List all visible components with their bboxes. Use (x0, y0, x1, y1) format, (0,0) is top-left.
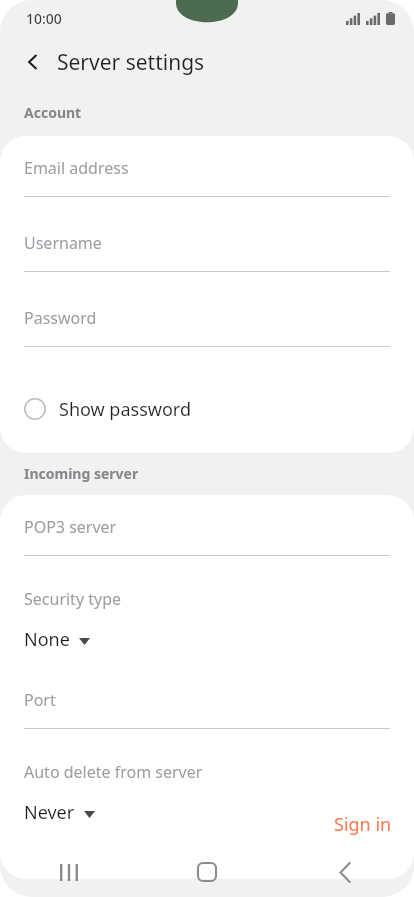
button[interactable]: Show password (0, 387, 414, 431)
button[interactable]: Recents (0, 847, 138, 897)
button[interactable]: Port (0, 686, 414, 761)
button[interactable]: Home (138, 847, 276, 897)
staticText: Security type (24, 588, 122, 610)
staticText: Port (24, 689, 56, 711)
staticText: Incoming server (24, 464, 139, 483)
button[interactable]: Security type (0, 588, 414, 686)
button[interactable]: Sign in (312, 803, 414, 846)
button[interactable]: Back (276, 847, 414, 897)
button[interactable]: Back (12, 41, 54, 83)
button[interactable]: Password (0, 304, 414, 379)
button[interactable]: Username (0, 229, 414, 304)
staticText: Email address (24, 157, 129, 179)
button[interactable]: Email address (0, 154, 414, 229)
button[interactable]: POP3 server (0, 513, 414, 588)
staticText: Show password (59, 397, 191, 422)
staticText: None (24, 627, 70, 652)
staticText: Sign in (334, 812, 392, 837)
staticText: Never (24, 800, 75, 825)
staticText: Auto delete from server (24, 761, 203, 783)
staticText: Account (24, 103, 82, 122)
button[interactable]: Auto delete from server (0, 761, 414, 859)
staticText: Username (24, 232, 102, 254)
staticText: POP3 server (24, 516, 117, 538)
staticText: Password (24, 307, 97, 329)
staticText: 10:00 (26, 9, 62, 28)
staticText: Server settings (57, 48, 205, 77)
